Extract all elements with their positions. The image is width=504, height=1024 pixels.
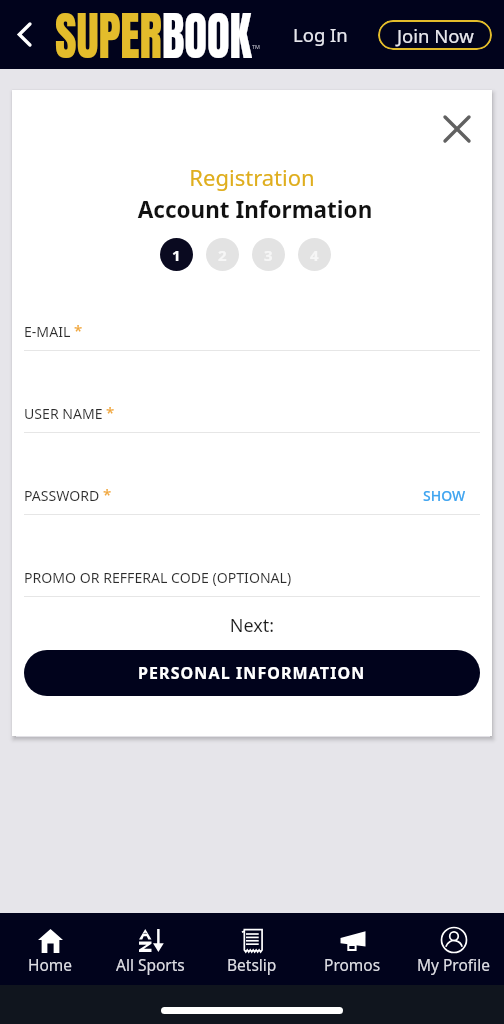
button[interactable]: SHOW	[423, 486, 466, 505]
staticText: SHOW	[423, 486, 466, 505]
button[interactable]: Close	[435, 107, 479, 151]
button[interactable]: My Profile	[403, 913, 504, 985]
staticText: *	[74, 320, 83, 340]
staticText: Home	[28, 954, 73, 975]
staticText: *	[106, 402, 115, 422]
staticText: 4	[310, 245, 319, 265]
staticText: Log In	[293, 22, 348, 47]
button[interactable]: PERSONAL INFORMATION	[24, 650, 480, 696]
staticText: *	[103, 484, 112, 504]
staticText: PERSONAL INFORMATION	[138, 662, 366, 684]
staticText: USER NAME	[24, 404, 103, 423]
button[interactable]: Home	[0, 913, 100, 985]
button[interactable]: 2	[206, 238, 239, 271]
staticText: 3	[264, 245, 273, 265]
staticText: PROMO OR REFFERAL CODE (OPTIONAL)	[24, 568, 292, 587]
staticText: Registration	[12, 162, 492, 192]
staticText: All Sports	[116, 954, 185, 975]
button[interactable]: Log In	[283, 14, 358, 55]
staticText: TM	[252, 43, 260, 51]
staticText: My Profile	[417, 954, 490, 975]
button[interactable]: 4	[298, 238, 331, 271]
staticText: E-MAIL	[24, 322, 71, 341]
staticText: Next:	[12, 613, 492, 638]
button[interactable]: Join Now	[378, 20, 492, 50]
button[interactable]: Promos	[302, 913, 403, 985]
button[interactable]: 1	[160, 238, 193, 271]
button[interactable]: Back	[0, 0, 48, 69]
button[interactable]: All Sports	[100, 913, 201, 985]
staticText: BOOK	[162, 0, 252, 66]
staticText: 1	[172, 245, 181, 265]
staticText: SUPER	[55, 0, 162, 66]
staticText: Account Information	[15, 194, 495, 225]
staticText: PASSWORD	[24, 486, 100, 505]
button[interactable]: Betslip	[201, 913, 302, 985]
staticText: Betslip	[227, 954, 277, 975]
button[interactable]: 3	[252, 238, 285, 271]
staticText: Promos	[324, 954, 381, 975]
staticText: Join Now	[397, 23, 474, 48]
staticText: 2	[218, 245, 227, 265]
